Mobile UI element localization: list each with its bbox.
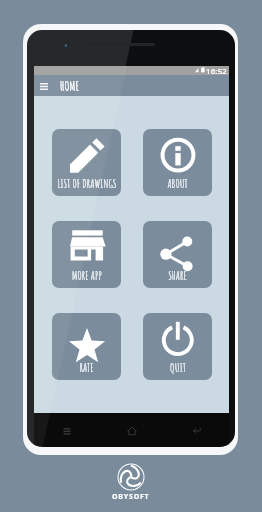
staticText: HOME (60, 77, 80, 94)
button[interactable]: LIST OF DRAWINGS (52, 129, 121, 196)
button[interactable]: QUIT (143, 313, 212, 380)
button[interactable]: MORE APP (52, 221, 121, 288)
staticText: OBYSOFT (112, 492, 150, 502)
button[interactable]: Home (99, 419, 164, 443)
button[interactable]: Recent apps (34, 419, 99, 443)
button[interactable]: SHARE (143, 221, 212, 288)
button[interactable]: Back (164, 419, 229, 443)
staticText: LIST OF DRAWINGS (57, 176, 117, 191)
button[interactable]: ABOUT (143, 129, 212, 196)
button[interactable]: Open navigation menu (34, 75, 229, 96)
staticText: 16:52 (206, 66, 227, 75)
staticText: SHARE (168, 268, 187, 283)
button[interactable]: RATE (52, 313, 121, 380)
staticText: MORE APP (72, 268, 102, 283)
staticText: QUIT (170, 360, 186, 375)
staticText: RATE (79, 360, 94, 375)
button[interactable]: Open navigation menu (38, 78, 49, 94)
staticText: ABOUT (167, 176, 188, 191)
